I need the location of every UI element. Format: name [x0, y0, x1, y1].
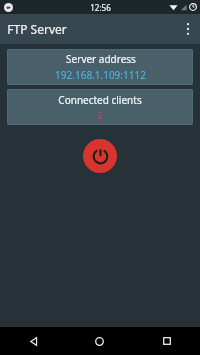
staticText: Server address — [66, 52, 136, 66]
staticText: FTP Server — [7, 21, 67, 37]
button[interactable]: Server address — [7, 49, 193, 85]
button[interactable]: More options — [176, 14, 200, 44]
button[interactable]: Back — [0, 327, 66, 355]
button[interactable]: Stop server — [83, 139, 117, 173]
staticText: 192.168.1.109:1112 — [55, 68, 146, 82]
button[interactable]: Home — [66, 327, 133, 355]
button[interactable]: Connected clients — [7, 89, 193, 125]
staticText: 12:56 — [90, 2, 111, 13]
staticText: 2 — [97, 109, 103, 121]
button[interactable]: Recent apps — [133, 327, 200, 355]
staticText: Connected clients — [58, 93, 142, 107]
